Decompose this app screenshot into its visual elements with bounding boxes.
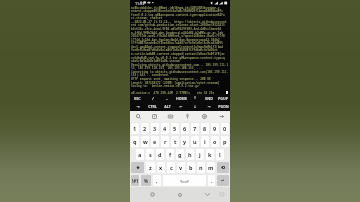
staticText: j — [199, 151, 201, 158]
button[interactable]: Settings — [196, 111, 213, 122]
button[interactable]: 9 — [211, 123, 219, 134]
staticText: 1 — [133, 125, 137, 132]
button[interactable]: i — [201, 136, 209, 147]
button[interactable]: ALT — [160, 102, 174, 111]
button[interactable]: ESC — [130, 94, 145, 102]
button[interactable]: PGDN — [216, 102, 230, 111]
button[interactable]: c — [167, 162, 175, 173]
button[interactable]: Recent apps — [142, 187, 162, 202]
button[interactable]: . — [208, 175, 215, 186]
staticText: 0 — [223, 125, 227, 132]
staticText: v — [179, 164, 183, 171]
button[interactable]: CTRL — [145, 102, 160, 111]
staticText: 153|:443... connected. — [131, 73, 170, 77]
button[interactable]: – — [160, 94, 174, 102]
staticText: . — [211, 177, 213, 184]
button[interactable]: l — [216, 149, 224, 160]
button[interactable]: 3 — [151, 123, 159, 134]
staticText: ct-stream; charset — [131, 16, 163, 20]
button[interactable]: s — [146, 149, 154, 160]
button[interactable]: d — [156, 149, 164, 160]
button[interactable]: / — [145, 94, 160, 102]
button[interactable]: e — [151, 136, 159, 147]
staticText: c — [170, 164, 173, 171]
button[interactable]: ↓ — [188, 102, 202, 111]
staticText: ↵ — [221, 178, 225, 183]
button[interactable]: , — [153, 175, 161, 186]
staticText: PGUP — [218, 96, 228, 101]
button[interactable]: r — [161, 136, 169, 147]
staticText: b — [189, 164, 193, 171]
button[interactable]: q — [131, 136, 139, 147]
button[interactable]: 1 — [131, 123, 139, 134]
button[interactable]: o — [211, 136, 219, 147]
button[interactable]: Search — [130, 111, 146, 122]
button[interactable]: % — [141, 175, 151, 186]
button[interactable]: Backspace — [217, 162, 229, 173]
button[interactable]: 0 — [221, 123, 229, 134]
button[interactable]: t — [171, 136, 179, 147]
staticText: --2023-04-27 11:53:14-- https://objects.… — [131, 20, 227, 24]
staticText: ent.com/github-production-release-asset-… — [131, 23, 225, 27]
button[interactable]: ⇥ — [130, 102, 145, 111]
staticText: 8 — [203, 125, 207, 132]
button[interactable]: 7 — [191, 123, 199, 134]
button[interactable]: ↑ — [188, 94, 202, 102]
button[interactable]: z — [146, 162, 155, 173]
button[interactable]: y — [181, 136, 189, 147]
button[interactable]: a — [136, 149, 144, 160]
button[interactable]: 6 — [181, 123, 189, 134]
button[interactable]: Shift — [131, 162, 144, 173]
staticText: y — [183, 138, 187, 145]
button[interactable]: 5 — [171, 123, 179, 134]
button[interactable]: HOME — [174, 94, 188, 102]
staticText: 53, 185.199.110.153, 185.199.108.153, ..… — [131, 66, 203, 70]
button[interactable]: ← — [174, 102, 188, 111]
staticText: x — [159, 164, 163, 171]
staticText: Connecting to objects.githubusercontent.… — [131, 70, 229, 74]
button[interactable]: Clipboard — [162, 111, 179, 122]
button[interactable]: x — [157, 162, 165, 173]
button[interactable]: PGUP — [216, 94, 230, 102]
button[interactable]: 8 — [201, 123, 209, 134]
staticText: s — [149, 151, 152, 158]
staticText: w — [143, 138, 148, 145]
staticText: u — [193, 138, 197, 145]
button[interactable]: Switch keyboard — [215, 187, 229, 202]
button[interactable]: h — [186, 149, 194, 160]
button[interactable]: → — [202, 102, 216, 111]
staticText: !#1 — [132, 178, 139, 184]
button[interactable]: Sticker — [146, 111, 162, 122]
button[interactable]: 4 — [161, 123, 169, 134]
button[interactable]: u — [191, 136, 199, 147]
button[interactable]: j — [196, 149, 204, 160]
button[interactable]: 2 — [141, 123, 149, 134]
button[interactable]: Back — [197, 187, 217, 202]
staticText: ← — [179, 105, 183, 109]
button[interactable]: b — [187, 162, 195, 173]
button[interactable]: f — [166, 149, 174, 160]
button[interactable]: g — [176, 149, 184, 160]
staticText: 3 — [153, 125, 157, 132]
staticText: 11:53 — [135, 1, 145, 6]
staticText: n — [199, 164, 203, 171]
button[interactable]: END — [202, 94, 216, 102]
button[interactable]: !#1 — [131, 175, 139, 186]
staticText: a4a6c0a9a2b0e1d0f2a0b.stream — [131, 59, 180, 63]
button[interactable]: ↵ — [217, 175, 229, 186]
staticText: p — [223, 138, 227, 145]
staticText: b2c624c-c9ce-4ead-9f04-ad5d3929f303-4ed-… — [131, 27, 222, 31]
button[interactable]: m — [207, 162, 215, 173]
button[interactable]: Space — [163, 175, 206, 186]
button[interactable]: v — [177, 162, 185, 173]
button[interactable]: w — [141, 136, 149, 147]
staticText: % — [144, 178, 148, 184]
button[interactable]: n — [197, 162, 205, 173]
button[interactable]: k — [206, 149, 214, 160]
button[interactable]: p — [221, 136, 229, 147]
button[interactable]: Voice — [179, 111, 196, 122]
button[interactable]: Home — [170, 187, 190, 202]
button[interactable]: More — [213, 111, 230, 122]
staticText: 6 — [183, 125, 187, 132]
staticText: – — [166, 96, 168, 101]
